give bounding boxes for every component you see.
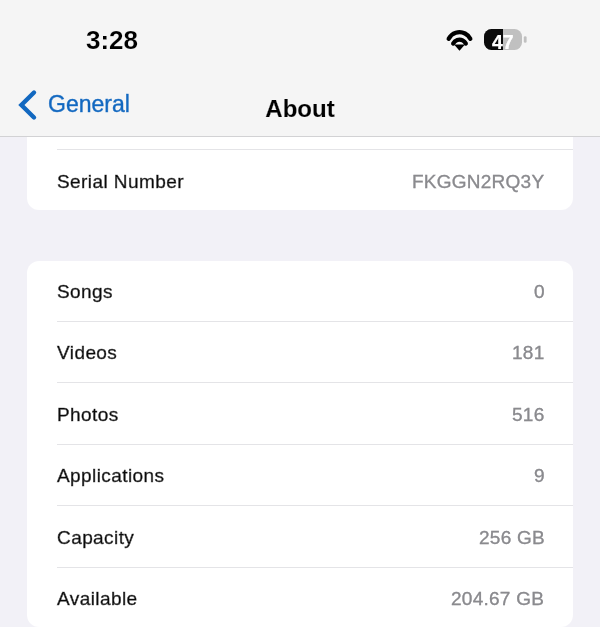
staticText: 181 (512, 342, 545, 363)
staticText: Capacity (57, 527, 135, 548)
staticText: About (0, 95, 600, 122)
button[interactable]: Applications (27, 445, 573, 506)
staticText: General (48, 91, 130, 117)
staticText: Capacity (57, 527, 135, 548)
staticText: Available (57, 588, 138, 609)
button[interactable]: Songs (27, 261, 573, 322)
other: Battery 47 percent (484, 29, 528, 51)
staticText: Videos (57, 342, 118, 363)
staticText: 516 (512, 404, 545, 425)
staticText: Serial Number (57, 171, 184, 192)
button[interactable]: Available (27, 568, 573, 627)
staticText: About (0, 95, 600, 122)
staticText: Applications (57, 465, 165, 486)
other: Wi-Fi (444, 28, 476, 52)
staticText: Available (57, 588, 138, 609)
staticText: General (48, 91, 130, 117)
button[interactable]: Videos (27, 322, 573, 383)
staticText: 3:28 (86, 25, 139, 54)
staticText: 204.67 GB (451, 588, 545, 609)
staticText: Songs (57, 281, 113, 302)
button[interactable]: General (14, 88, 130, 122)
staticText: 9 (534, 465, 545, 486)
button[interactable]: Photos (27, 384, 573, 445)
staticText: 9 (534, 465, 545, 486)
staticText: Songs (57, 281, 113, 302)
staticText: Photos (57, 404, 119, 425)
staticText: FKGGN2RQ3Y (412, 171, 545, 192)
staticText: Serial Number (57, 171, 184, 192)
staticText: 256 GB (479, 527, 545, 548)
staticText: FKGGN2RQ3Y (412, 171, 545, 192)
staticText: 516 (512, 404, 545, 425)
staticText: Applications (57, 465, 165, 486)
staticText: 47 (492, 31, 514, 53)
staticText: 181 (512, 342, 545, 363)
button[interactable]: Serial Number (27, 137, 573, 210)
staticText: 256 GB (479, 527, 545, 548)
button[interactable]: Capacity (27, 507, 573, 568)
staticText: 0 (534, 281, 545, 302)
staticText: Videos (57, 342, 118, 363)
staticText: Photos (57, 404, 119, 425)
staticText: 204.67 GB (451, 588, 545, 609)
staticText: 0 (534, 281, 545, 302)
